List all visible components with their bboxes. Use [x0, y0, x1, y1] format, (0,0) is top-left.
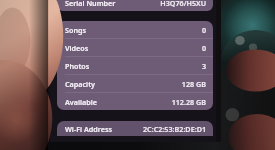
- staticText: 3: [201, 61, 206, 71]
- button[interactable]: Videos: [57, 39, 213, 56]
- staticText: Photos: [65, 61, 90, 71]
- button[interactable]: Photos: [57, 57, 213, 74]
- button[interactable]: Capacity: [57, 75, 213, 92]
- staticText: Songs: [65, 25, 87, 35]
- staticText: 128 GB: [181, 79, 206, 89]
- staticText: Available: [65, 97, 97, 107]
- staticText: 0: [201, 43, 206, 53]
- staticText: Capacity: [65, 79, 95, 89]
- staticText: 2C:C2:53:B2:DE:D1: [142, 124, 206, 134]
- button[interactable]: Available: [57, 93, 213, 110]
- button[interactable]: Serial Number: [57, 0, 213, 11]
- staticText: Videos: [65, 43, 89, 53]
- button[interactable]: Songs: [57, 21, 213, 38]
- staticText: H3Q76/H5XU: [160, 0, 206, 8]
- button[interactable]: Wi-Fi Address: [57, 121, 213, 136]
- staticText: Serial Number: [65, 0, 116, 8]
- staticText: 112.28 GB: [171, 97, 206, 107]
- staticText: 0: [201, 25, 206, 35]
- staticText: Wi-Fi Address: [65, 124, 113, 134]
